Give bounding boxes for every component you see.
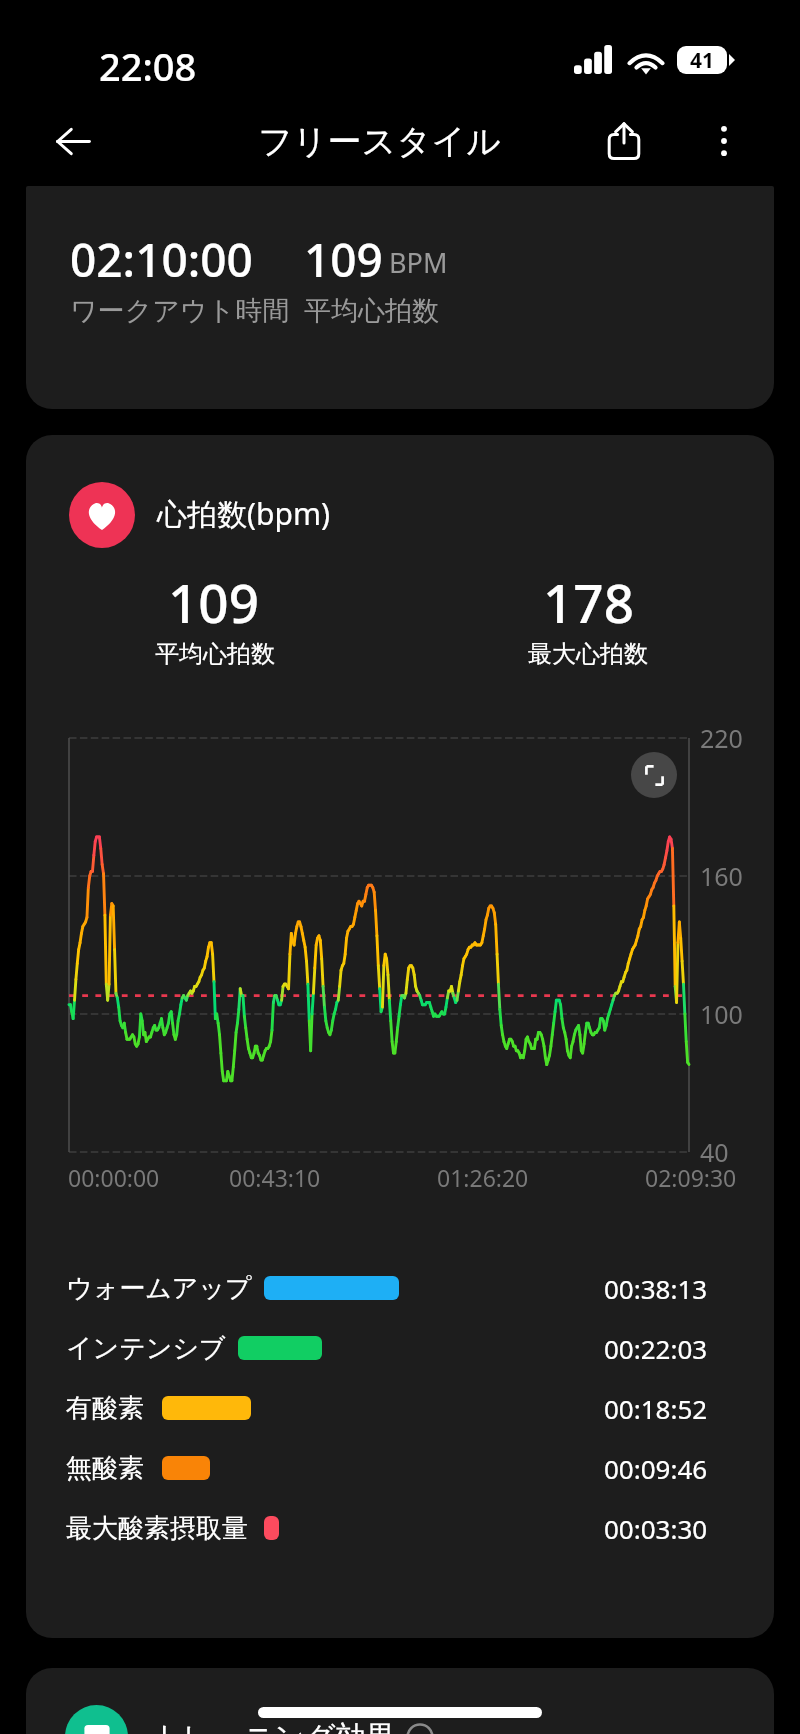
staticText: 109 (168, 566, 259, 638)
staticText: 無酸素 (66, 1452, 144, 1485)
staticText: 160 (700, 859, 743, 893)
staticText: BPM (389, 244, 448, 281)
button[interactable]: Expand chart (631, 752, 677, 798)
staticText: 00:43:10 (229, 1162, 321, 1193)
staticText: 178 (543, 566, 634, 638)
staticText: インテンシブ (66, 1332, 226, 1365)
staticText: 22:08 (99, 40, 197, 92)
staticText: 00:00:00 (68, 1162, 160, 1193)
button[interactable]: 02:10:00 (26, 186, 774, 409)
button[interactable]: Back (45, 113, 101, 169)
staticText: 01:26:20 (437, 1162, 529, 1193)
button[interactable]: トレーニング効果 (26, 1668, 774, 1734)
button[interactable]: ウォームアップ (26, 1258, 774, 1318)
staticText: 00:22:03 (604, 1331, 708, 1366)
staticText: 00:38:13 (604, 1271, 708, 1306)
staticText: 02:09:30 (645, 1162, 737, 1193)
button[interactable]: インテンシブ (26, 1318, 774, 1378)
staticText: 平均心拍数 (304, 294, 439, 328)
staticText: 100 (700, 997, 743, 1031)
staticText: ウォームアップ (66, 1272, 252, 1305)
staticText: 41 (690, 46, 715, 74)
staticText: ワークアウト時間 (70, 294, 290, 328)
staticText: 00:03:30 (604, 1511, 708, 1546)
staticText: 00:18:52 (604, 1391, 708, 1426)
staticText: 220 (700, 721, 743, 755)
staticText: 40 (700, 1135, 729, 1169)
staticText: 平均心拍数 (155, 639, 275, 669)
staticText: トレーニング効果 (152, 1718, 396, 1734)
button[interactable]: 無酸素 (26, 1438, 774, 1498)
staticText: 最大酸素摂取量 (66, 1512, 248, 1545)
button[interactable]: 有酸素 (26, 1378, 774, 1438)
staticText: 02:10:00 (70, 228, 253, 291)
staticText: 00:09:46 (604, 1451, 708, 1486)
staticText: 109 (304, 228, 383, 291)
staticText: 最大心拍数 (528, 639, 648, 669)
staticText: 有酸素 (66, 1392, 144, 1425)
staticText: フリースタイル (258, 120, 501, 163)
button[interactable]: 最大酸素摂取量 (26, 1498, 774, 1558)
button[interactable]: More options (696, 113, 752, 169)
staticText: 心拍数(bpm) (157, 493, 330, 534)
button[interactable]: Share (596, 113, 652, 169)
